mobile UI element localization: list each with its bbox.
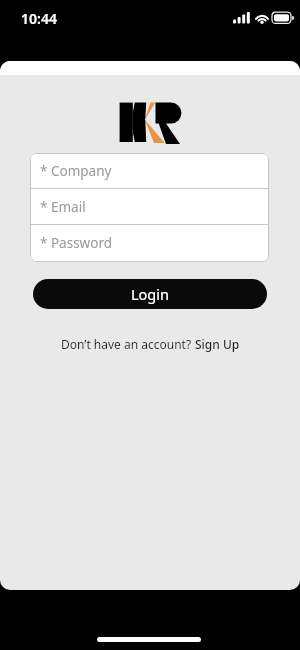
- staticText: Login: [131, 284, 169, 304]
- button[interactable]: Sign Up: [195, 336, 240, 352]
- staticText: 10:44: [21, 9, 57, 28]
- staticText: * Email: [40, 198, 86, 216]
- button[interactable]: * Company: [30, 153, 269, 188]
- staticText: * Password: [40, 234, 113, 252]
- staticText: Don’t have an account?: [61, 336, 195, 352]
- button[interactable]: * Email: [30, 189, 269, 224]
- button[interactable]: * Password: [30, 225, 269, 260]
- button[interactable]: Login: [33, 279, 267, 309]
- staticText: * Company: [40, 162, 112, 180]
